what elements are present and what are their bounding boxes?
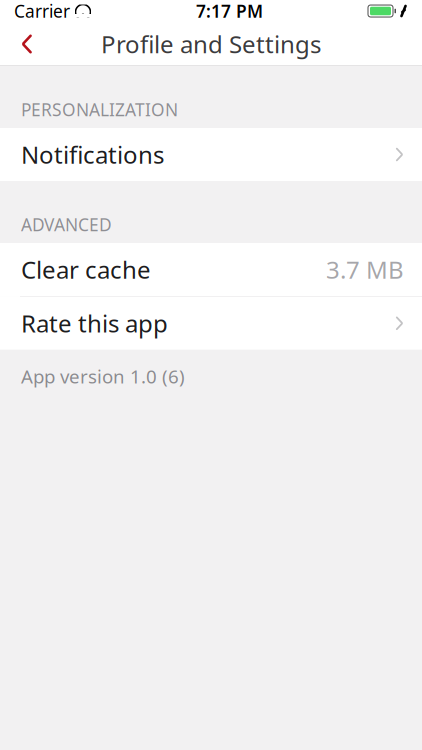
button[interactable]: Rate this app [0,297,422,350]
staticText: Rate this app [21,307,168,339]
staticText: 7:17 PM [196,0,263,22]
staticText: Profile and Settings [101,28,321,60]
button[interactable]: Clear cache, 3.7 MB [0,243,422,296]
staticText: PERSONALIZATION [21,98,178,121]
staticText: Notifications [21,139,164,170]
staticText: 3.7 MB [326,254,404,285]
staticText: App version 1.0 (6) [21,364,185,389]
staticText: Carrier [14,0,70,22]
staticText: Clear cache [21,254,151,285]
staticText: ADVANCED [21,213,112,236]
button[interactable]: Back [0,22,54,66]
button[interactable]: Notifications [0,128,422,181]
